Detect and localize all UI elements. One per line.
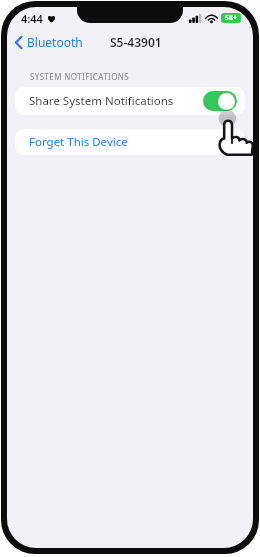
- staticText: Share System Notifications: [29, 93, 174, 109]
- button[interactable]: Share System Notifications: [15, 87, 245, 115]
- button[interactable]: Forget This Device: [15, 129, 245, 155]
- button[interactable]: Bluetooth: [7, 32, 89, 52]
- staticText: Bluetooth: [27, 34, 83, 50]
- staticText: SYSTEM NOTIFICATIONS: [30, 71, 130, 82]
- button[interactable]: Share System Notifications toggle: [203, 91, 237, 111]
- staticText: S5-43901: [110, 34, 162, 50]
- staticText: Forget This Device: [29, 134, 128, 150]
- staticText: 4:44: [21, 11, 43, 26]
- staticText: 58+: [225, 13, 238, 23]
